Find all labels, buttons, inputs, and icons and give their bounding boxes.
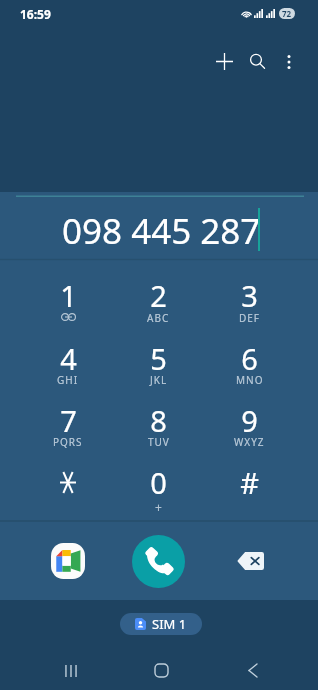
button[interactable]: Search: [241, 45, 274, 78]
button[interactable]: 6: [204, 328, 295, 390]
button[interactable]: Recent apps: [26, 651, 116, 690]
button[interactable]: SIM 1: [120, 613, 202, 635]
button[interactable]: 5: [113, 328, 204, 390]
staticText: JKL: [150, 373, 168, 387]
staticText: DEF: [239, 311, 261, 325]
button[interactable]: Add contact: [208, 45, 241, 78]
staticText: PQRS: [53, 435, 83, 449]
button[interactable]: 9: [204, 390, 295, 452]
staticText: TUV: [148, 435, 170, 449]
staticText: ABC: [147, 311, 170, 325]
staticText: 4: [60, 339, 77, 378]
button[interactable]: 0: [113, 452, 204, 514]
staticText: 8: [150, 401, 167, 440]
staticText: 2: [150, 276, 167, 315]
button[interactable]: 3: [204, 265, 295, 328]
staticText: #: [240, 463, 259, 502]
button[interactable]: #: [204, 452, 295, 514]
button[interactable]: Back: [207, 651, 298, 690]
button[interactable]: 8: [113, 390, 204, 452]
button[interactable]: Video call: [44, 537, 92, 585]
button[interactable]: Call: [132, 535, 185, 588]
button[interactable]: 1: [23, 265, 113, 328]
staticText: 6: [241, 339, 258, 378]
button[interactable]: Home: [116, 651, 207, 690]
staticText: +: [155, 499, 162, 515]
staticText: 1: [60, 276, 77, 315]
staticText: 7: [60, 401, 77, 440]
staticText: 3: [241, 276, 258, 315]
staticText: SIM 1: [152, 615, 187, 633]
button[interactable]: More options: [274, 47, 304, 77]
button[interactable]: 4: [23, 328, 113, 390]
staticText: 098 445 287: [62, 207, 261, 255]
button[interactable]: [23, 452, 113, 514]
button[interactable]: 2: [113, 265, 204, 328]
staticText: 5: [150, 339, 167, 378]
button[interactable]: Backspace: [228, 539, 272, 583]
staticText: MNO: [236, 373, 264, 387]
staticText: GHI: [57, 373, 79, 387]
staticText: WXYZ: [234, 435, 265, 449]
button[interactable]: 7: [23, 390, 113, 452]
staticText: 72: [282, 8, 292, 19]
staticText: 9: [241, 401, 258, 440]
staticText: 0: [150, 463, 167, 502]
staticText: 16:59: [20, 6, 51, 22]
